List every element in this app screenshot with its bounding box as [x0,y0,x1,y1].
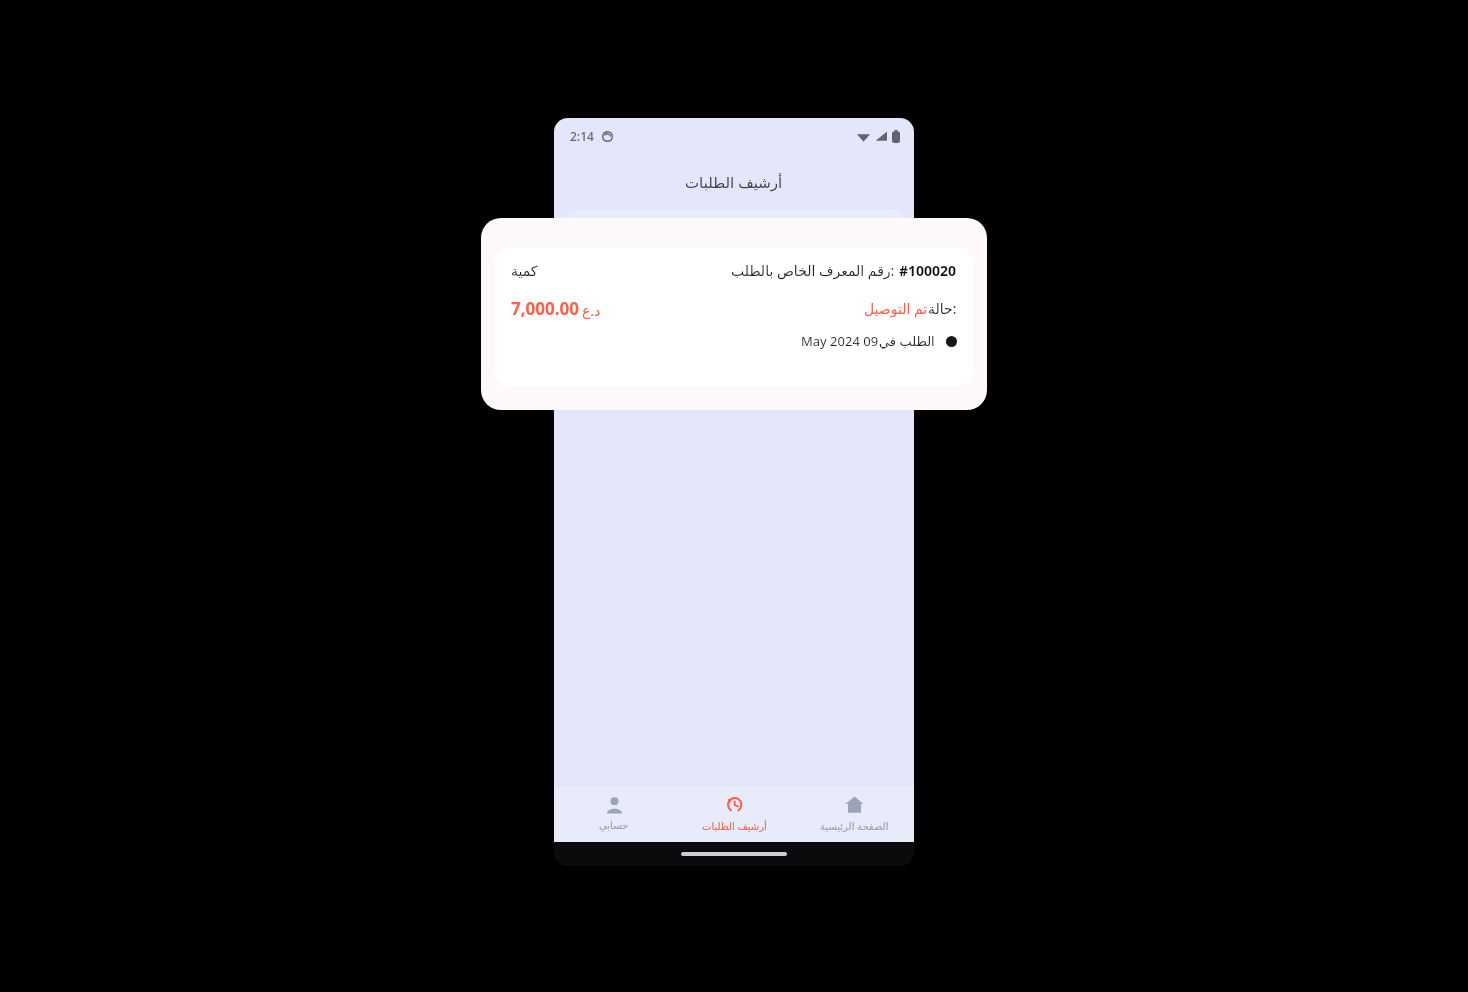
button[interactable]: كمية [495,248,973,386]
staticText: الصفحة الرئيسية [820,819,889,833]
staticText: كمية [511,263,538,279]
staticText: 7,000.00 [511,297,579,320]
staticText: 2:14 [570,128,594,144]
staticText: May 2024 09 [801,332,879,350]
staticText: أرشيف الطلبات [702,819,767,833]
staticText: تم التوصيل [864,299,928,318]
staticText: الطلب في [879,332,935,350]
staticText: حسابي [599,820,629,832]
staticText: حالة: [928,299,957,318]
button[interactable]: الصفحة الرئيسية [794,786,914,842]
staticText: #100020 [899,261,957,280]
button[interactable]: حسابي [554,786,674,842]
staticText: رقم المعرف الخاص بالطلب: [731,261,899,280]
button[interactable]: أرشيف الطلبات [674,786,794,842]
staticText: أرشيف الطلبات [685,172,783,192]
button[interactable] [564,210,904,410]
staticText: د.ع [582,301,601,320]
other: Status dot [946,336,957,347]
